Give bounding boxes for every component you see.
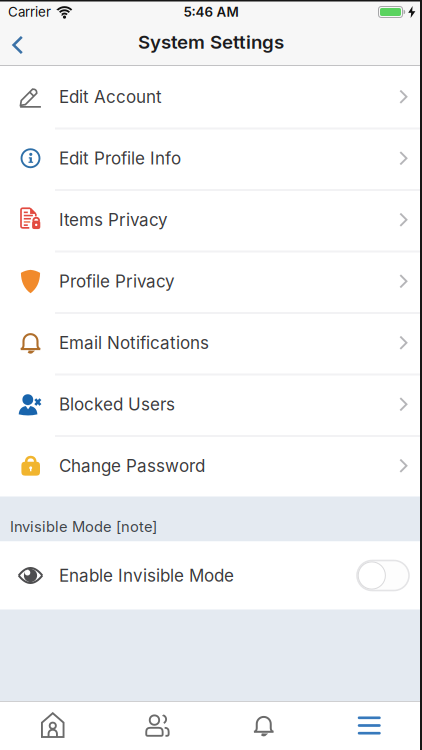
button[interactable]: Friends [105, 701, 211, 750]
staticText: Change Password [59, 455, 205, 476]
staticText: Email Notifications [59, 332, 209, 353]
button[interactable]: Email Notifications [0, 312, 422, 373]
staticText: Carrier [8, 4, 51, 20]
button[interactable]: Edit Profile Info [0, 127, 422, 189]
button[interactable]: Blocked Users [0, 373, 422, 435]
staticText: Profile Privacy [59, 271, 175, 292]
staticText: Enable Invisible Mode [59, 565, 234, 586]
staticText: Edit Account [59, 86, 162, 107]
button[interactable]: Enable Invisible Mode [357, 560, 409, 590]
button[interactable]: Change Password [0, 435, 422, 496]
button[interactable]: Edit Account [0, 66, 422, 127]
button[interactable]: Notifications [211, 701, 316, 750]
staticText: 5:46 AM [183, 4, 238, 20]
staticText: Items Privacy [59, 209, 168, 230]
button[interactable]: Items Privacy [0, 189, 422, 250]
staticText: Edit Profile Info [59, 148, 181, 169]
button[interactable]: Menu [316, 701, 422, 750]
staticText: System Settings [138, 31, 284, 53]
button[interactable]: Profile Privacy [0, 250, 422, 312]
staticText: Blocked Users [59, 394, 175, 415]
button[interactable]: Home [0, 701, 105, 750]
button[interactable]: Back [0, 36, 33, 54]
staticText: Invisible Mode [note] [10, 518, 157, 535]
